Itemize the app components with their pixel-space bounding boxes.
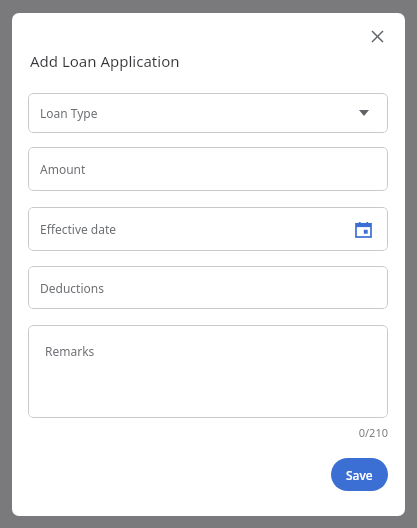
staticText: Remarks: [45, 343, 95, 359]
button[interactable]: Effective date: [28, 207, 388, 251]
staticText: Loan Type: [40, 105, 98, 121]
button[interactable]: Amount: [28, 147, 388, 191]
staticText: Amount: [40, 161, 86, 177]
staticText: 0/210: [28, 425, 388, 440]
button[interactable]: Open loan type options: [354, 103, 374, 123]
button[interactable]: Save: [331, 458, 388, 491]
staticText: Deductions: [40, 280, 104, 296]
staticText: Effective date: [40, 221, 117, 237]
button[interactable]: Close: [357, 16, 397, 56]
button[interactable]: Loan Type: [28, 93, 388, 133]
button[interactable]: Remarks: [28, 325, 388, 418]
button[interactable]: Pick date: [352, 218, 374, 240]
button[interactable]: Deductions: [28, 266, 388, 309]
staticText: Save: [346, 467, 373, 483]
staticText: Add Loan Application: [30, 51, 180, 71]
